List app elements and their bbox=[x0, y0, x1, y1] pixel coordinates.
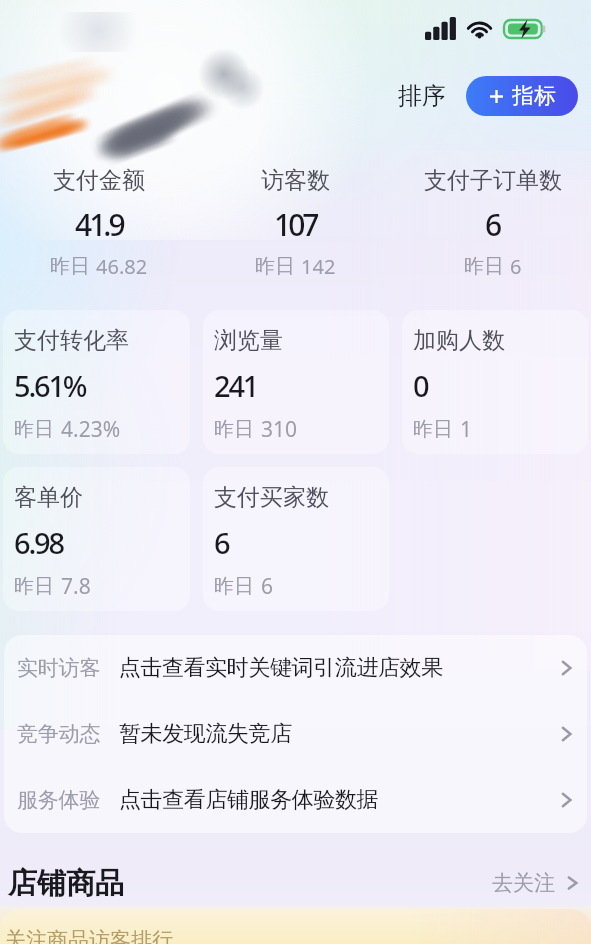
button[interactable]: 服务体验 bbox=[4, 767, 587, 833]
staticText: 昨日 bbox=[255, 254, 295, 279]
other: 打开 bbox=[560, 657, 573, 679]
staticText: 昨日 bbox=[50, 254, 90, 279]
button[interactable]: 排序 bbox=[390, 73, 454, 119]
button[interactable]: 竞争动态 bbox=[4, 701, 587, 767]
button[interactable]: 浏览量 bbox=[203, 310, 389, 454]
button[interactable]: 支付子订单数 bbox=[394, 166, 591, 280]
staticText: 支付转化率 bbox=[14, 326, 129, 355]
staticText: 服务体验 bbox=[17, 787, 101, 813]
staticText: 支付子订单数 bbox=[424, 166, 562, 195]
staticText: 客单价 bbox=[14, 483, 83, 512]
button[interactable]: 加购人数 bbox=[402, 310, 588, 454]
staticText: 排序 bbox=[398, 81, 446, 111]
staticText: 关注商品访客排行 bbox=[5, 927, 173, 944]
staticText: 昨日 bbox=[214, 417, 254, 442]
staticText: 41.9 bbox=[75, 204, 123, 245]
button[interactable]: 支付转化率 bbox=[3, 310, 190, 454]
staticText: 241 bbox=[214, 366, 258, 405]
staticText: 6.98 bbox=[14, 523, 63, 562]
staticText: 支付买家数 bbox=[214, 483, 329, 512]
staticText: 暂未发现流失竞店 bbox=[119, 720, 292, 748]
staticText: 6 bbox=[261, 572, 274, 601]
staticText: 访客数 bbox=[261, 166, 330, 195]
staticText: 142 bbox=[301, 253, 336, 280]
staticText: 5.61% bbox=[14, 366, 86, 405]
staticText: 46.82 bbox=[96, 253, 148, 280]
staticText: 支付金额 bbox=[53, 166, 145, 195]
button[interactable]: 指标 bbox=[466, 76, 578, 116]
button[interactable]: 实时访客 bbox=[4, 635, 587, 701]
button[interactable]: 支付买家数 bbox=[203, 467, 389, 611]
staticText: 6 bbox=[485, 204, 500, 245]
staticText: 1 bbox=[460, 415, 473, 444]
staticText: 昨日 bbox=[413, 417, 453, 442]
staticText: 点击查看店铺服务体验数据 bbox=[119, 786, 379, 814]
staticText: 去关注 bbox=[492, 870, 555, 896]
button[interactable]: 去关注 bbox=[486, 864, 585, 902]
staticText: 指标 bbox=[512, 82, 556, 110]
button[interactable]: 支付金额 bbox=[0, 166, 197, 280]
staticText: 4.23% bbox=[61, 415, 121, 444]
staticText: 竞争动态 bbox=[17, 721, 101, 747]
staticText: 107 bbox=[274, 204, 317, 245]
staticText: 昨日 bbox=[14, 574, 54, 599]
staticText: 昨日 bbox=[464, 254, 504, 279]
staticText: 实时访客 bbox=[17, 655, 101, 681]
staticText: 6 bbox=[214, 523, 229, 562]
other: 打开 bbox=[566, 873, 579, 893]
staticText: 0 bbox=[413, 366, 428, 405]
staticText: 加购人数 bbox=[413, 326, 505, 355]
staticText: 6 bbox=[510, 253, 522, 280]
staticText: 浏览量 bbox=[214, 326, 283, 355]
staticText: 7.8 bbox=[61, 572, 91, 601]
staticText: 昨日 bbox=[14, 417, 54, 442]
button[interactable]: 客单价 bbox=[3, 467, 190, 611]
staticText: 店铺商品 bbox=[8, 865, 124, 902]
other: 打开 bbox=[560, 789, 573, 811]
other: 打开 bbox=[560, 723, 573, 745]
button[interactable]: 访客数 bbox=[197, 166, 394, 280]
staticText: 昨日 bbox=[214, 574, 254, 599]
staticText: 点击查看实时关键词引流进店效果 bbox=[119, 654, 443, 682]
staticText: 310 bbox=[261, 415, 298, 444]
